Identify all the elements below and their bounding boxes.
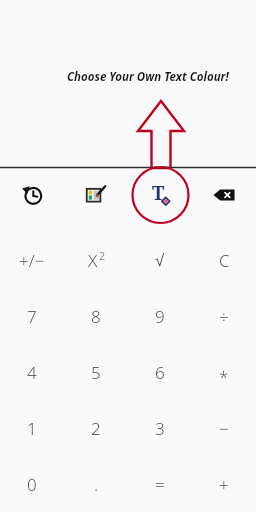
button[interactable]: Text colour [128, 172, 192, 218]
button[interactable]: 8 [64, 288, 128, 344]
button[interactable]: 1 [0, 400, 64, 456]
staticText: 9 [155, 305, 165, 328]
staticText: 7 [27, 305, 37, 328]
staticText: − [219, 417, 229, 440]
button[interactable]: 7 [0, 288, 64, 344]
staticText: 4 [27, 361, 37, 384]
button[interactable]: 3 [128, 400, 192, 456]
button[interactable]: − [192, 400, 256, 456]
button[interactable]: ÷ [192, 288, 256, 344]
staticText: 2 [99, 248, 106, 263]
staticText: 8 [91, 305, 101, 328]
button[interactable]: 6 [128, 344, 192, 400]
button[interactable]: = [128, 456, 192, 512]
button[interactable]: C [192, 232, 256, 288]
staticText: 5 [91, 361, 101, 384]
button[interactable]: History [0, 172, 64, 218]
staticText: C [219, 249, 230, 272]
button[interactable]: 9 [128, 288, 192, 344]
staticText: Choose Your Own Text Colour! [67, 69, 229, 85]
button[interactable]: 0 [0, 456, 64, 512]
button[interactable]: Backspace [192, 172, 256, 218]
staticText: +/− [19, 249, 45, 272]
staticText: 1 [27, 417, 37, 440]
staticText: 6 [155, 361, 165, 384]
staticText: X [88, 249, 98, 272]
staticText: . [94, 473, 99, 496]
button[interactable]: + [192, 456, 256, 512]
staticText: = [155, 473, 165, 496]
staticText: 0 [27, 473, 37, 496]
button[interactable]: 5 [64, 344, 128, 400]
button[interactable]: 2 [64, 400, 128, 456]
staticText: ÷ [219, 305, 229, 328]
button[interactable]: +/− [0, 232, 64, 288]
button[interactable]: √ [128, 232, 192, 288]
button[interactable]: X [64, 232, 128, 288]
staticText: 2 [91, 417, 101, 440]
staticText: * [219, 365, 229, 388]
staticText: + [219, 473, 229, 496]
button[interactable]: 4 [0, 344, 64, 400]
button[interactable]: * [192, 344, 256, 400]
button[interactable]: Theme [64, 172, 128, 218]
staticText: T [152, 180, 165, 206]
staticText: √ [155, 251, 165, 270]
staticText: 3 [155, 417, 165, 440]
